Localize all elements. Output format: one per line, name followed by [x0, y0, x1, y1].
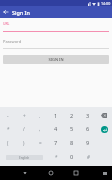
- staticText: -: [7, 113, 9, 119]
- button[interactable]: Enter: [96, 122, 112, 136]
- button[interactable]: 3: [80, 109, 96, 122]
- staticText: /: [23, 126, 25, 132]
- staticText: 7: [54, 139, 58, 147]
- button[interactable]: /: [16, 122, 32, 136]
- button[interactable]: Navigate up: [0, 6, 12, 18]
- button[interactable]: Password: [3, 39, 109, 49]
- staticText: #: [87, 154, 90, 160]
- button[interactable]: 7: [48, 136, 64, 150]
- button[interactable]: 0: [64, 150, 80, 164]
- button[interactable]: Space: [0, 150, 48, 164]
- button[interactable]: *: [48, 150, 64, 164]
- button[interactable]: 4: [48, 122, 64, 136]
- button[interactable]: 5: [64, 122, 80, 136]
- button[interactable]: ,: [32, 122, 48, 136]
- staticText: 9: [86, 139, 90, 147]
- staticText: SIGN IN: [48, 57, 64, 62]
- staticText: +: [23, 113, 26, 119]
- button[interactable]: (: [0, 136, 16, 150]
- staticText: *: [55, 154, 58, 160]
- staticText: 5: [70, 125, 74, 133]
- staticText: (: [7, 140, 9, 146]
- staticText: *: [7, 126, 10, 132]
- staticText: 2: [70, 112, 74, 120]
- staticText: 1: [54, 112, 58, 120]
- button[interactable]: 9: [80, 136, 96, 150]
- button[interactable]: Recent apps: [71, 168, 81, 178]
- button[interactable]: Hide keyboard: [20, 168, 30, 178]
- staticText: 0: [70, 153, 74, 161]
- staticText: 4: [54, 125, 58, 133]
- button[interactable]: Home: [46, 168, 56, 178]
- staticText: Sign In: [12, 9, 30, 16]
- staticText: URL: [3, 21, 10, 26]
- staticText: ,: [39, 126, 41, 132]
- button[interactable]: #: [80, 150, 96, 164]
- button[interactable]: *: [0, 122, 16, 136]
- button[interactable]: +: [16, 109, 32, 122]
- staticText: Password: [3, 39, 22, 44]
- button[interactable]: SIGN IN: [3, 55, 109, 64]
- button[interactable]: =: [32, 136, 48, 150]
- staticText: English: [19, 156, 30, 160]
- button[interactable]: 8: [64, 136, 80, 150]
- button[interactable]: Switch keyboard: [101, 169, 109, 177]
- staticText: 6: [86, 125, 90, 133]
- staticText: 8: [70, 139, 74, 147]
- button[interactable]: 2: [64, 109, 80, 122]
- button[interactable]: ): [16, 136, 32, 150]
- staticText: ): [23, 140, 25, 146]
- button[interactable]: 1: [48, 109, 64, 122]
- button[interactable]: Delete: [96, 109, 112, 122]
- staticText: =: [39, 140, 42, 146]
- staticText: .: [39, 113, 41, 119]
- staticText: 3: [86, 112, 90, 120]
- staticText: 14:00: [101, 1, 111, 6]
- button[interactable]: 6: [80, 122, 96, 136]
- button[interactable]: URL: [3, 21, 109, 32]
